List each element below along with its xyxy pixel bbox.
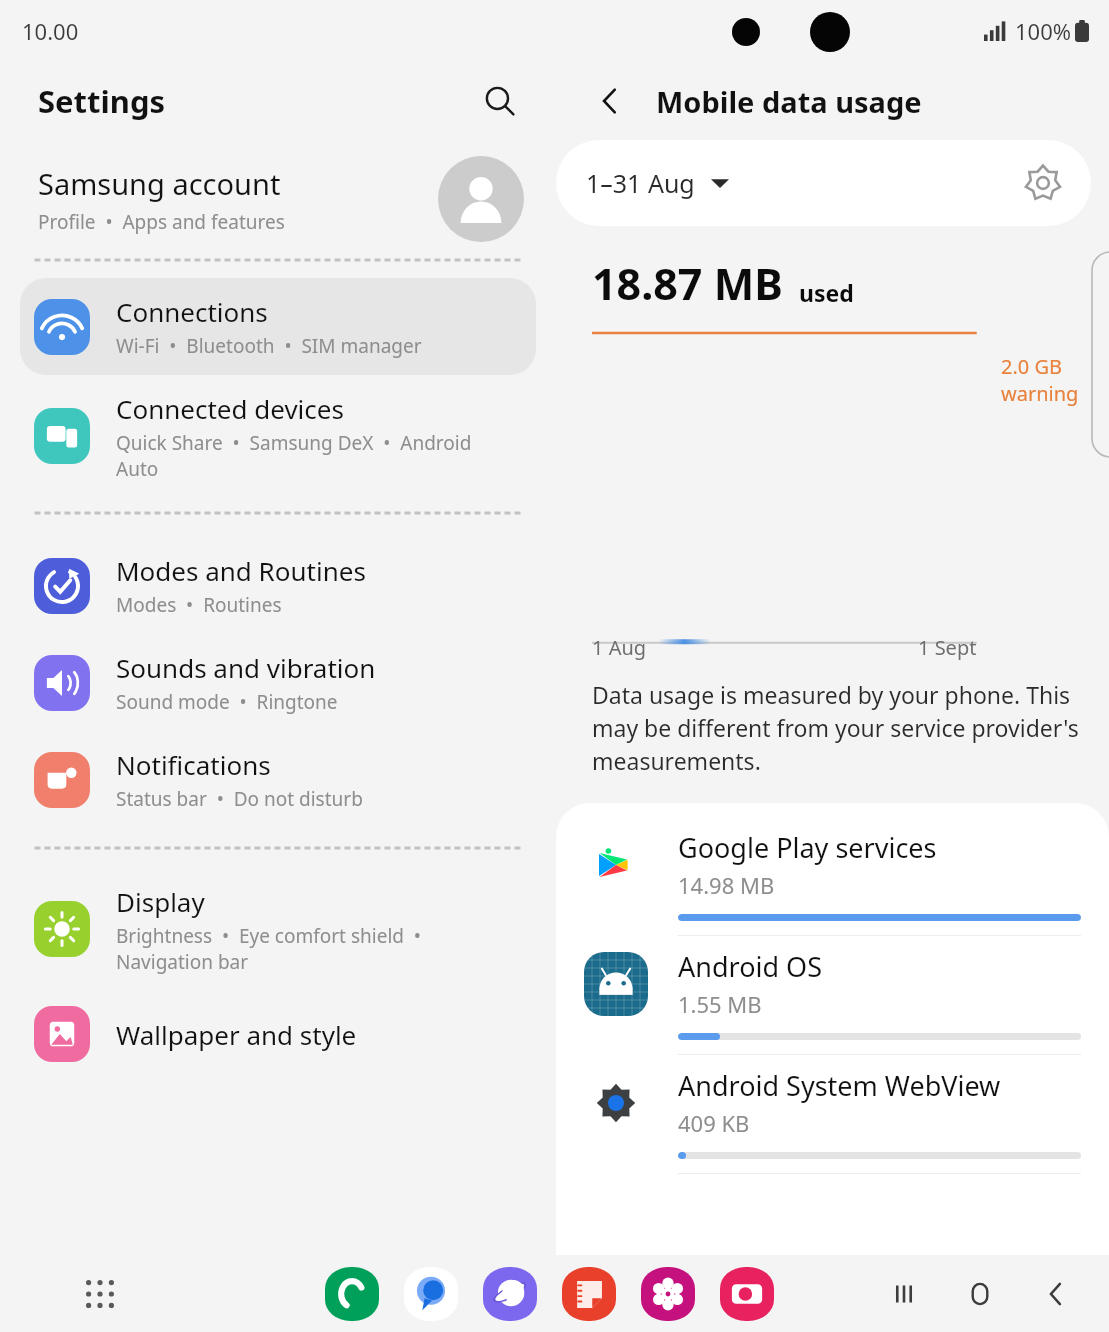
button[interactable]: 1–31 Aug [556,140,1091,226]
staticText: 100% [1015,16,1072,46]
button[interactable]: Android System WebView [584,1055,1081,1174]
staticText: Profile • Apps and features [38,209,285,235]
button[interactable]: Notifications [20,731,536,828]
button[interactable]: Back [1031,1269,1081,1319]
staticText: Wi-Fi • Bluetooth • SIM manager [116,333,422,359]
staticText: Modes • Routines [116,592,282,618]
button[interactable]: Search [472,73,528,129]
button[interactable]: Camera [718,1265,776,1323]
staticText: 18.87 MB [592,254,783,313]
staticText: 409 KB [678,1108,750,1138]
staticText: Display [116,884,205,919]
staticText: used [799,277,854,308]
button[interactable]: Modes and Routines [20,537,536,634]
staticText: Connections [116,294,268,329]
staticText: Samsung account [38,164,281,203]
staticText: Status bar • Do not disturb [116,786,363,812]
staticText: 1 Aug [592,634,647,661]
button[interactable]: Data usage settings [1017,157,1069,209]
button[interactable]: Wallpaper and style [20,990,536,1078]
button[interactable]: Home [955,1269,1005,1319]
button[interactable]: Sounds and vibration [20,634,536,731]
staticText: 10.00 [22,16,79,46]
staticText: Wallpaper and style [116,1017,357,1052]
button[interactable]: Back [582,73,638,129]
button[interactable]: Messages [402,1265,460,1323]
button[interactable]: Notes [560,1265,618,1323]
button[interactable]: Connections [20,278,536,375]
staticText: Modes and Routines [116,553,366,588]
staticText: Android System WebView [678,1067,1001,1104]
staticText: 2.0 GB [1001,353,1062,380]
button[interactable]: Android OS [584,936,1081,1055]
button[interactable]: Recents [879,1269,929,1319]
staticText: Data usage is measured by your phone. Th… [592,679,1079,777]
staticText: Android OS [678,948,822,985]
button[interactable]: Phone [323,1265,381,1323]
staticText: Sound mode • Ringtone [116,689,338,715]
staticText: 1–31 Aug [586,166,695,200]
staticText: Notifications [116,747,271,782]
staticText: 1 Sept [918,634,977,661]
button[interactable]: Internet [481,1265,539,1323]
button[interactable]: Gallery [639,1265,697,1323]
staticText: Brightness • Eye comfort shield • Naviga… [116,923,421,974]
button[interactable]: Connected devices [20,375,536,497]
staticText: 1.55 MB [678,989,762,1019]
staticText: warning [1001,380,1079,407]
staticText: Connected devices [116,391,344,426]
button[interactable]: Display [20,868,536,990]
staticText: Quick Share • Samsung DeX • Android Auto [116,430,472,481]
button[interactable]: Samsung account [0,140,556,258]
staticText: Settings [38,80,166,122]
staticText: Google Play services [678,829,937,866]
button[interactable]: Apps [72,1266,128,1322]
staticText: Mobile data usage [656,82,922,121]
staticText: 14.98 MB [678,870,775,900]
staticText: Sounds and vibration [116,650,376,685]
button[interactable]: Google Play services [584,817,1081,936]
